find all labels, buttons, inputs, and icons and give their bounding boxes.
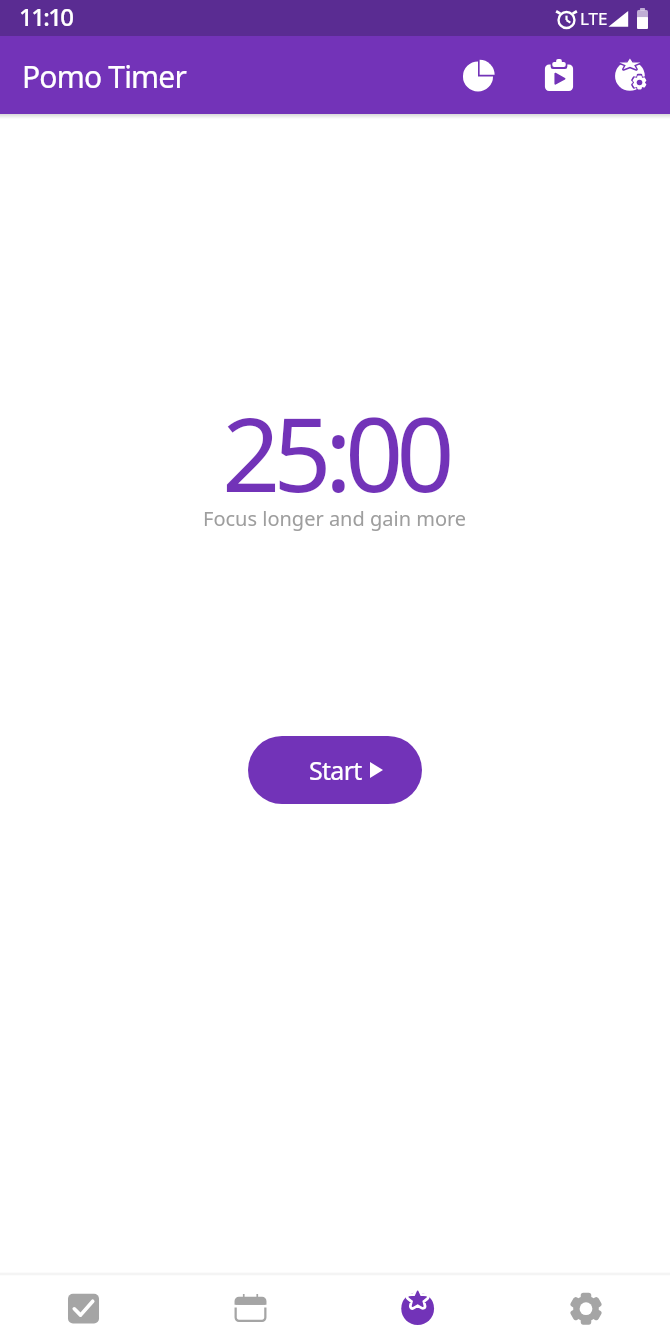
- staticText: Pomo Timer: [22, 56, 187, 97]
- button[interactable]: Statistics: [452, 49, 504, 101]
- staticText: Focus longer and gain more: [203, 505, 467, 531]
- staticText: 25:00: [222, 383, 448, 522]
- button[interactable]: Calendar: [167, 1276, 334, 1340]
- staticText: LTE: [580, 7, 608, 30]
- staticText: Start: [309, 753, 362, 787]
- button[interactable]: Task list: [533, 49, 585, 101]
- button[interactable]: Settings: [502, 1276, 670, 1340]
- button[interactable]: Tasks: [0, 1276, 167, 1340]
- staticText: 11:10: [19, 0, 73, 33]
- button[interactable]: Timer settings: [605, 49, 657, 101]
- button[interactable]: Timer: [334, 1276, 502, 1340]
- button[interactable]: Start timer: [248, 736, 422, 804]
